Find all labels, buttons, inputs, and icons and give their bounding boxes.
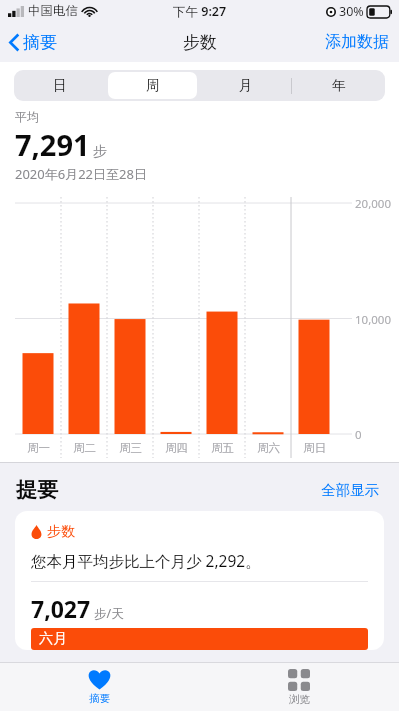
staticText: 30% bbox=[339, 3, 364, 20]
staticText: 平均 bbox=[15, 109, 39, 124]
button[interactable]: 摘要 bbox=[0, 28, 65, 57]
button[interactable]: 年 bbox=[294, 72, 383, 99]
staticText: 周三 bbox=[119, 441, 142, 455]
staticText: 7,027 bbox=[31, 593, 91, 624]
staticText: 20,000 bbox=[355, 196, 391, 212]
staticText: 周四 bbox=[165, 441, 188, 455]
staticText: 7,291 bbox=[15, 125, 90, 164]
staticText: 六月 bbox=[39, 630, 67, 648]
button[interactable]: 周 bbox=[108, 72, 197, 99]
staticText: 10,000 bbox=[355, 312, 391, 328]
staticText: 添加数据 bbox=[325, 32, 389, 52]
staticText: 浏览 bbox=[289, 693, 310, 706]
staticText: 中国电信 bbox=[28, 3, 78, 19]
button[interactable]: 浏览 bbox=[199, 663, 399, 711]
staticText: 摘要 bbox=[23, 32, 57, 53]
other: 浏览 bbox=[288, 669, 310, 691]
staticText: 步数 bbox=[183, 32, 217, 53]
staticText: 周二 bbox=[73, 441, 96, 455]
staticText: 您本月平均步比上个月少 2,292。 bbox=[31, 550, 261, 571]
staticText: 周 bbox=[146, 77, 160, 94]
staticText: 摘要 bbox=[89, 692, 110, 705]
staticText: 月 bbox=[239, 77, 253, 94]
button[interactable]: 添加数据 bbox=[315, 27, 399, 57]
staticText: 周六 bbox=[257, 441, 280, 455]
button[interactable]: 步数 bbox=[15, 511, 384, 650]
staticText: 提要 bbox=[16, 477, 58, 503]
button[interactable]: 日 bbox=[16, 72, 104, 99]
staticText: 周日 bbox=[303, 441, 326, 455]
other: 摘要 bbox=[88, 669, 111, 690]
staticText: 0 bbox=[355, 427, 362, 443]
staticText: 2020年6月22日至28日 bbox=[15, 165, 147, 183]
staticText: 周一 bbox=[27, 441, 50, 455]
staticText: 全部显示 bbox=[321, 481, 379, 499]
staticText: 步/天 bbox=[94, 605, 124, 622]
staticText: 日 bbox=[53, 77, 67, 94]
button[interactable]: 月 bbox=[201, 72, 290, 99]
staticText: 周五 bbox=[211, 441, 234, 455]
staticText: 下午 9:27 bbox=[173, 3, 227, 20]
staticText: 步数 bbox=[47, 523, 75, 541]
button[interactable]: 摘要 bbox=[0, 663, 199, 711]
staticText: 步 bbox=[93, 143, 107, 161]
button[interactable]: 全部显示 bbox=[317, 477, 383, 503]
staticText: 年 bbox=[332, 77, 346, 94]
